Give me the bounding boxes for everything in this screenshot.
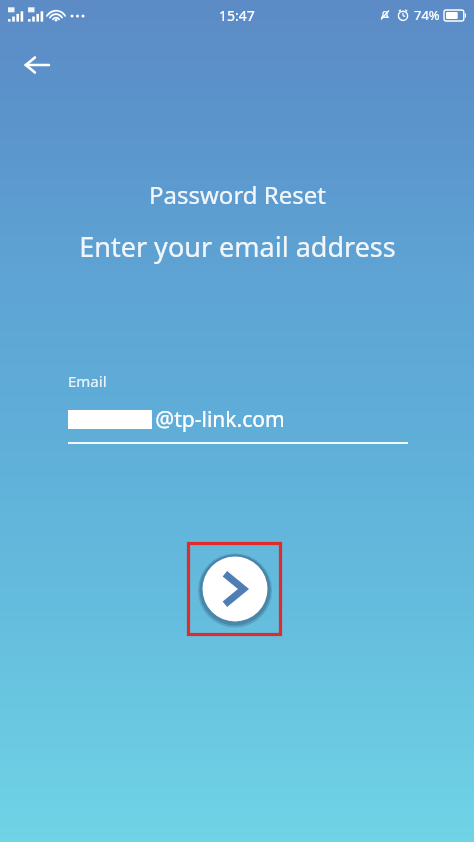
staticText: Password Reset [149, 178, 326, 211]
button[interactable]: Back [10, 38, 64, 92]
staticText: @tp-link.com [68, 405, 285, 434]
staticText: 74% [414, 6, 440, 24]
staticText: Email [68, 371, 107, 391]
button[interactable]: Email [68, 371, 408, 444]
staticText: Enter your email address [79, 228, 396, 265]
staticText: 15:47 [219, 6, 255, 25]
button[interactable]: Submit [198, 552, 272, 626]
